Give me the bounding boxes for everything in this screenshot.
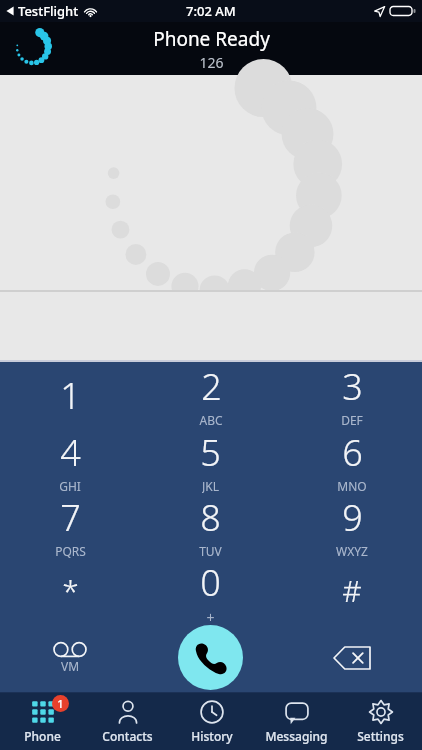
staticText: PQRS [55,543,86,558]
button[interactable]: * [0,558,140,623]
button[interactable]: 3 [281,362,422,428]
staticText: TUV [199,543,222,558]
staticText: 1 [60,371,81,420]
button[interactable]: 2 [140,362,281,428]
staticText: 3 [342,362,363,411]
staticText: Phone Ready [153,26,270,52]
button[interactable]: 5 [140,428,281,493]
button[interactable]: 1 [0,362,140,428]
staticText: JKL [202,478,219,493]
staticText: Messaging [265,728,328,744]
button[interactable]: Contacts [85,693,170,750]
button[interactable]: 8 [140,493,281,558]
button[interactable]: Voicemail [0,623,140,692]
staticText: TestFlight [18,2,79,20]
staticText: 126 [199,53,224,72]
staticText: 8 [200,493,221,542]
staticText: History [191,728,233,744]
button[interactable]: Call [178,625,243,690]
button[interactable]: Messaging [254,693,338,750]
staticText: 2 [201,362,222,411]
staticText: 1 [57,696,64,711]
button[interactable]: 4 [0,428,140,493]
staticText: DEF [341,412,363,428]
staticText: ABC [199,412,223,428]
button[interactable]: 0 [140,558,281,623]
button[interactable]: 1 [0,693,85,750]
staticText: Phone [24,728,61,744]
button[interactable]: 6 [281,428,422,493]
button[interactable]: 9 [281,493,422,558]
button[interactable]: Settings [338,693,422,750]
staticText: 9 [342,493,363,542]
button[interactable]: 7 [0,493,140,558]
button[interactable]: History [170,693,254,750]
staticText: GHI [59,478,81,493]
staticText: Settings [357,728,404,744]
staticText: 5 [200,428,221,477]
staticText: 4 [60,428,81,477]
staticText: # [342,570,362,611]
staticText: * [62,570,79,611]
staticText: 6 [342,428,363,477]
button[interactable]: # [281,558,422,623]
staticText: VM [61,658,80,674]
staticText: 7 [60,493,81,542]
staticText: 7:02 AM [186,2,236,20]
staticText: WXYZ [336,543,368,558]
staticText: + [206,608,215,623]
staticText: 0 [200,558,221,607]
button[interactable]: Backspace [281,623,422,692]
staticText: Contacts [102,728,153,744]
staticText: MNO [337,478,367,493]
